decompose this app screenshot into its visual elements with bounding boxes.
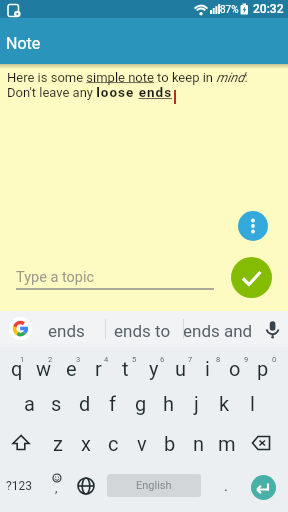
- button[interactable]: g: [127, 386, 154, 420]
- staticText: w: [36, 357, 52, 380]
- staticText: k: [219, 392, 230, 415]
- staticText: 6: [160, 355, 165, 364]
- button[interactable]: f: [99, 386, 126, 420]
- staticText: q: [11, 357, 23, 380]
- button[interactable]: v: [128, 426, 155, 460]
- staticText: ends to: [114, 321, 171, 341]
- button[interactable]: ?123: [2, 471, 36, 501]
- staticText: u: [175, 357, 187, 380]
- staticText: 5: [132, 355, 137, 364]
- staticText: ends: [48, 321, 85, 341]
- button[interactable]: b: [156, 426, 183, 460]
- staticText: Here is some simple note to keep in mind…: [7, 70, 248, 101]
- staticText: v: [137, 432, 147, 455]
- staticText: p: [257, 357, 269, 380]
- staticText: n: [193, 432, 205, 455]
- button[interactable]: [248, 429, 276, 457]
- button[interactable]: [263, 320, 282, 347]
- button[interactable]: l: [239, 386, 266, 420]
- button[interactable]: [231, 257, 272, 298]
- staticText: c: [108, 432, 119, 455]
- button[interactable]: [75, 475, 97, 497]
- button[interactable]: o: [221, 351, 248, 385]
- button[interactable]: t: [112, 351, 139, 385]
- button[interactable]: c: [100, 426, 127, 460]
- staticText: a: [24, 392, 35, 415]
- staticText: f: [109, 392, 116, 415]
- button[interactable]: h: [155, 386, 182, 420]
- button[interactable]: w: [30, 351, 57, 385]
- staticText: j: [194, 392, 199, 415]
- button[interactable]: [238, 211, 268, 241]
- staticText: .: [224, 477, 228, 495]
- button[interactable]: Type a topic: [7, 260, 217, 294]
- staticText: 4: [104, 355, 109, 364]
- button[interactable]: .: [213, 471, 239, 501]
- staticText: b: [164, 432, 176, 455]
- staticText: 1: [20, 355, 25, 364]
- button[interactable]: ends: [34, 316, 98, 346]
- button[interactable]: English: [107, 474, 201, 497]
- button[interactable]: p: [249, 351, 276, 385]
- button[interactable]: e: [58, 351, 85, 385]
- button[interactable]: [251, 475, 276, 500]
- staticText: x: [81, 432, 91, 455]
- button[interactable]: [7, 429, 35, 457]
- staticText: t: [122, 357, 129, 380]
- staticText: l: [250, 392, 255, 415]
- button[interactable]: k: [211, 386, 238, 420]
- staticText: 0: [272, 355, 277, 364]
- staticText: 3: [76, 355, 81, 364]
- staticText: g: [135, 392, 147, 415]
- staticText: d: [79, 392, 91, 415]
- staticText: 87%: [220, 4, 239, 16]
- button[interactable]: j: [183, 386, 210, 420]
- staticText: m: [218, 432, 236, 455]
- staticText: ends and: [183, 321, 253, 341]
- button[interactable]: ,: [46, 469, 70, 503]
- button[interactable]: z: [44, 426, 71, 460]
- button[interactable]: ends and: [182, 316, 254, 346]
- staticText: y: [149, 357, 159, 380]
- staticText: Type a topic: [16, 269, 95, 286]
- staticText: 7: [188, 355, 193, 364]
- staticText: e: [66, 357, 77, 380]
- staticText: ,: [55, 481, 58, 495]
- staticText: s: [51, 392, 62, 415]
- button[interactable]: [8, 316, 33, 341]
- staticText: Note: [6, 34, 41, 53]
- button[interactable]: i: [194, 351, 221, 385]
- button[interactable]: u: [167, 351, 194, 385]
- staticText: i: [205, 357, 210, 380]
- staticText: o: [229, 357, 241, 380]
- staticText: r: [95, 357, 102, 380]
- staticText: English: [136, 479, 172, 492]
- staticText: 2: [48, 355, 53, 364]
- staticText: 9: [244, 355, 249, 364]
- button[interactable]: r: [85, 351, 112, 385]
- staticText: 20:32: [253, 2, 284, 16]
- button[interactable]: s: [43, 386, 70, 420]
- button[interactable]: n: [185, 426, 212, 460]
- staticText: 8: [216, 355, 221, 364]
- button[interactable]: m: [213, 426, 240, 460]
- staticText: ?123: [6, 479, 32, 493]
- button[interactable]: a: [16, 386, 43, 420]
- button[interactable]: ends to: [107, 316, 177, 346]
- button[interactable]: q: [3, 351, 30, 385]
- button[interactable]: x: [72, 426, 99, 460]
- button[interactable]: d: [71, 386, 98, 420]
- staticText: h: [163, 392, 175, 415]
- button[interactable]: y: [140, 351, 167, 385]
- staticText: z: [53, 432, 63, 455]
